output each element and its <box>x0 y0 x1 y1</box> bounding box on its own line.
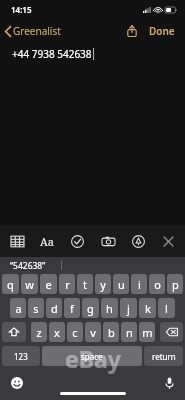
staticText: f <box>70 301 74 316</box>
staticText: w <box>25 277 34 292</box>
staticText: v <box>90 325 96 340</box>
staticText: Aa <box>40 234 54 249</box>
staticText: Greenalist <box>13 24 61 38</box>
button[interactable]: v <box>85 322 101 342</box>
staticText: t <box>83 277 87 292</box>
button[interactable]: space <box>42 346 142 366</box>
staticText: r <box>65 277 70 292</box>
staticText: s <box>33 301 39 316</box>
button[interactable]: Backspace <box>160 322 183 342</box>
button[interactable]: b <box>103 322 119 342</box>
staticText: i <box>138 277 141 292</box>
staticText: h <box>106 301 113 316</box>
staticText: b <box>108 325 115 340</box>
button[interactable]: k <box>139 298 156 318</box>
button[interactable]: o <box>149 274 165 294</box>
staticText: g <box>87 301 94 316</box>
staticText: e <box>45 277 52 292</box>
staticText: k <box>145 301 151 316</box>
button[interactable]: p <box>167 274 183 294</box>
staticText: n <box>126 325 133 340</box>
button[interactable]: Close <box>155 228 181 254</box>
button[interactable]: Dictation <box>162 374 177 393</box>
button[interactable]: l <box>158 298 175 318</box>
button[interactable]: Done <box>143 19 185 43</box>
button[interactable]: s <box>28 298 44 318</box>
button[interactable]: d <box>46 298 62 318</box>
button[interactable]: g <box>82 298 99 318</box>
staticText: z <box>36 325 42 340</box>
button[interactable]: return <box>144 346 183 366</box>
button[interactable]: Share <box>121 19 143 43</box>
staticText: y <box>100 277 106 292</box>
button[interactable]: c <box>67 322 83 342</box>
button[interactable]: r <box>59 274 75 294</box>
button[interactable]: “542638” <box>10 260 46 272</box>
staticText: m <box>142 325 153 340</box>
button[interactable]: Camera <box>95 228 121 254</box>
staticText: l <box>165 301 168 316</box>
button[interactable]: j <box>120 298 137 318</box>
staticText: q <box>7 277 14 292</box>
button[interactable]: a <box>10 298 26 318</box>
button[interactable]: Check <box>64 228 90 254</box>
staticText: c <box>72 325 78 340</box>
button[interactable]: f <box>64 298 80 318</box>
button[interactable]: u <box>113 274 129 294</box>
button[interactable]: Text format <box>34 228 60 254</box>
staticText: space <box>81 351 103 362</box>
staticText: x <box>54 325 60 340</box>
button[interactable]: t <box>77 274 93 294</box>
staticText: 123 <box>14 351 28 362</box>
button[interactable]: q <box>2 274 19 294</box>
button[interactable]: i <box>131 274 147 294</box>
button[interactable]: w <box>21 274 38 294</box>
button[interactable]: 123 <box>2 346 40 366</box>
button[interactable]: Greenalist <box>0 20 67 42</box>
staticText: a <box>15 301 22 316</box>
button[interactable]: Format table <box>4 228 30 254</box>
button[interactable]: x <box>49 322 65 342</box>
button[interactable]: y <box>95 274 111 294</box>
staticText: 14:15 <box>11 4 32 15</box>
button[interactable]: e <box>40 274 57 294</box>
staticText: j <box>127 301 130 316</box>
button[interactable]: Shift <box>2 322 26 342</box>
button[interactable]: m <box>139 322 155 342</box>
staticText: +44 7938 542638 <box>12 47 92 61</box>
staticText: o <box>154 277 161 292</box>
button[interactable]: Emoji <box>8 374 26 392</box>
staticText: p <box>172 277 179 292</box>
button[interactable]: z <box>31 322 47 342</box>
staticText: return <box>152 351 176 362</box>
button[interactable]: Markup <box>125 228 151 254</box>
staticText: d <box>51 301 58 316</box>
staticText: Done <box>149 24 175 38</box>
staticText: eBay <box>65 343 121 374</box>
staticText: u <box>118 277 125 292</box>
button[interactable]: h <box>101 298 118 318</box>
button[interactable]: n <box>121 322 137 342</box>
